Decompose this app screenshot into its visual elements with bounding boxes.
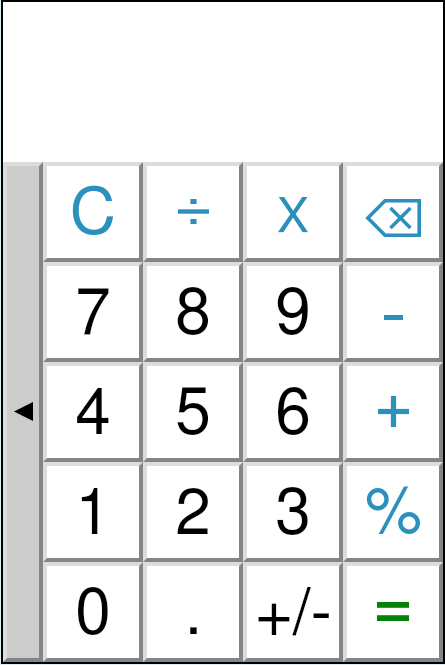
staticText: 4	[75, 383, 111, 447]
button[interactable]: Divide	[143, 162, 243, 262]
staticText: 6	[275, 383, 311, 447]
button[interactable]: %	[343, 462, 443, 562]
button[interactable]: 4	[43, 362, 143, 462]
button[interactable]: 7	[43, 262, 143, 362]
staticText: .	[185, 583, 201, 647]
button[interactable]: Plus	[343, 362, 443, 462]
button[interactable]: 3	[243, 462, 343, 562]
button[interactable]: +/-	[243, 562, 343, 662]
button[interactable]: 1	[43, 462, 143, 562]
button[interactable]: .	[143, 562, 243, 662]
button[interactable]: Multiply	[243, 162, 343, 262]
button[interactable]: 5	[143, 362, 243, 462]
button[interactable]: 9	[243, 262, 343, 362]
button[interactable]: 0	[43, 562, 143, 662]
staticText: C	[70, 183, 116, 247]
staticText: X	[277, 194, 309, 242]
button[interactable]: Backspace	[343, 162, 443, 262]
staticText: 3	[275, 483, 311, 547]
button[interactable]: C	[43, 162, 143, 262]
button[interactable]: Collapse keypad	[3, 162, 43, 662]
button[interactable]: 6	[243, 362, 343, 462]
staticText: 8	[175, 283, 211, 347]
staticText: 5	[175, 383, 211, 447]
button[interactable]: 8	[143, 262, 243, 362]
button[interactable]: Minus	[343, 262, 443, 362]
button[interactable]: 2	[143, 462, 243, 562]
staticText: 7	[75, 283, 111, 347]
staticText: 1	[75, 483, 111, 547]
staticText: %	[365, 482, 422, 546]
staticText: 2	[175, 483, 211, 547]
button[interactable]: Equals	[343, 562, 443, 662]
staticText: 0	[75, 583, 111, 647]
staticText: 9	[275, 283, 311, 347]
staticText: +/-	[255, 583, 332, 647]
